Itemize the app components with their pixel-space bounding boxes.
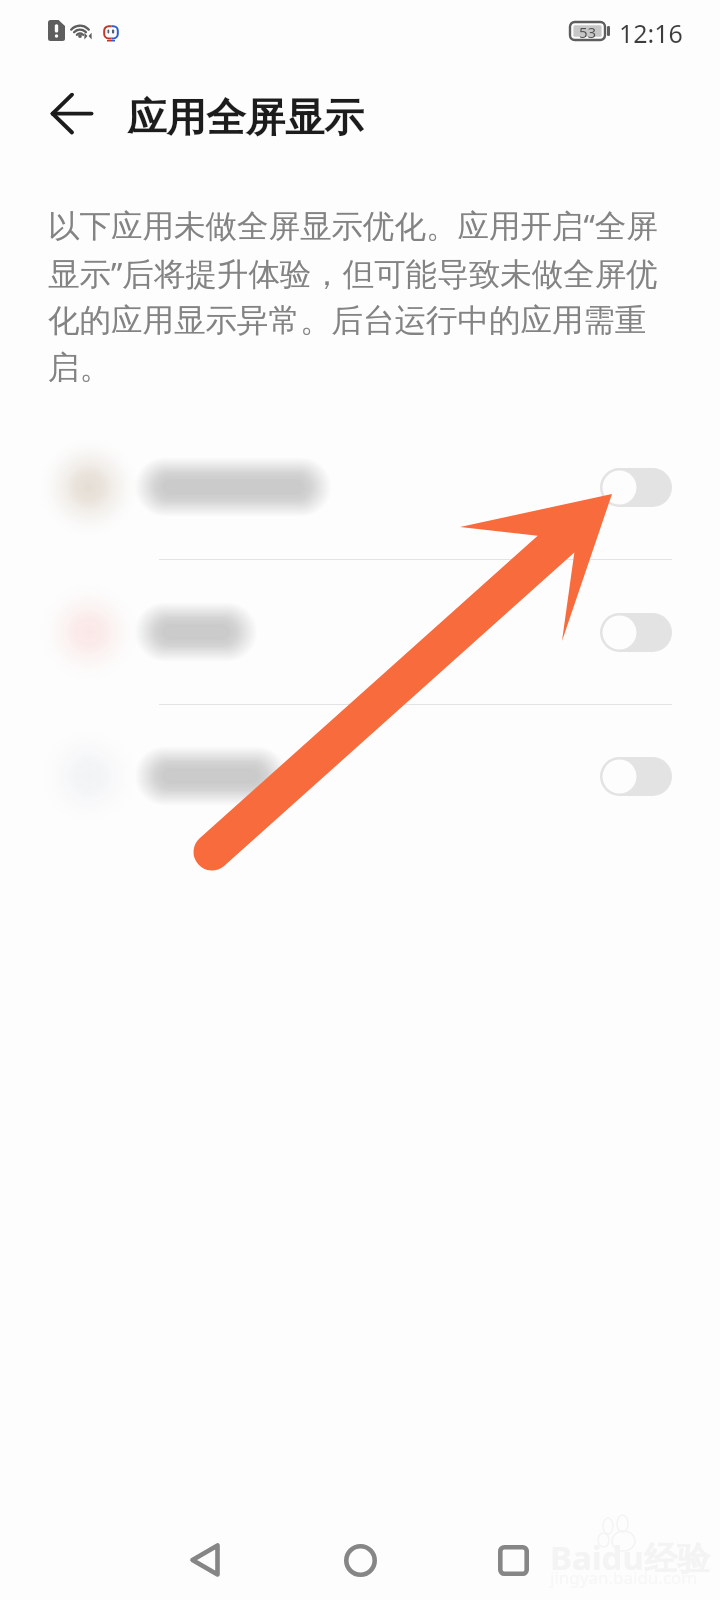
staticText: 53 [579, 22, 597, 40]
staticText: 应用全屏显示 [127, 93, 364, 143]
button[interactable]: Toggle full screen display [0, 704, 720, 848]
button[interactable]: Back [155, 1510, 255, 1600]
button[interactable]: Toggle full screen display [600, 757, 672, 796]
button[interactable]: Recents [463, 1510, 563, 1600]
button[interactable]: Toggle full screen display [0, 415, 720, 559]
staticText: Baidu经验 [550, 1535, 710, 1580]
staticText: 以下应用未做全屏显示优化。应用开启“全屏显示”后将提升体验，但可能导致未做全屏优… [48, 203, 678, 387]
staticText: jingyan.baidu.com [550, 1566, 698, 1589]
staticText: 12:16 [619, 16, 683, 50]
button[interactable]: Home [310, 1510, 410, 1600]
button[interactable]: Toggle full screen display [0, 560, 720, 704]
button[interactable]: Toggle full screen display [600, 468, 672, 507]
button[interactable]: Back [30, 80, 98, 148]
button[interactable]: Toggle full screen display [600, 613, 672, 652]
